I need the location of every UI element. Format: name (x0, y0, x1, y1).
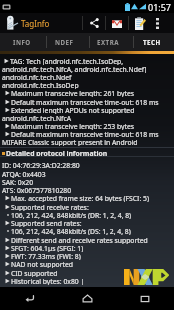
staticText: Extended length APDUs not supported (11, 106, 135, 114)
button[interactable]: Max. accepted frame size: 64 bytes (FSCI… (0, 194, 174, 202)
staticText: CID supported (11, 269, 58, 277)
staticText: Supported send rates: (11, 219, 82, 227)
button[interactable]: Extended length APDUs not supported (0, 106, 174, 114)
button[interactable]: SAK: 0x20 (0, 178, 174, 186)
staticText: FWT: 77.33ms (FWI: 8) (11, 252, 81, 260)
button[interactable]: MIFARE Classic support present in Androi… (0, 138, 174, 146)
staticText: Default maximum transceive time-out: 618… (11, 98, 159, 106)
button[interactable]: More options (151, 13, 164, 33)
staticText: ATQA: 0x4403 (2, 170, 46, 178)
staticText: android.nfc.tech.NfcA, android.nfc.tech.… (2, 65, 147, 73)
button[interactable]: Back (0, 287, 58, 310)
staticText: ATS: 0x067577810280 (2, 186, 72, 194)
staticText: SFGT: 604.1µs (SFGI: 1) (11, 244, 84, 252)
staticText: Maximum transceive length: 261 bytes (11, 89, 134, 97)
button[interactable]: ID: 04:76:29:3A:D2:28:80 (0, 161, 174, 169)
button[interactable]: CID supported (0, 269, 174, 277)
button[interactable]: Share (83, 13, 105, 33)
staticText: TECH (143, 38, 161, 46)
button[interactable]: Supported receive rates: (0, 203, 174, 211)
staticText: TAG: Tech [android.nfc.tech.IsoDep, (10, 57, 124, 65)
staticText: Maximum transceive length: 253 bytes (11, 122, 134, 130)
staticText: INFO (13, 38, 31, 46)
button[interactable]: android.nfc.tech.NfcA (0, 114, 174, 122)
staticText: 106, 212, 424, 848kbit/s (DS: 1, 2, 4, 8… (11, 227, 131, 235)
staticText: EXTRA (97, 38, 120, 46)
staticText: Different send and receive rates support… (11, 236, 148, 244)
button[interactable]: ATS: 0x067577810280 (0, 186, 174, 194)
button[interactable]: SFGT: 604.1µs (SFGI: 1) (0, 244, 174, 252)
button[interactable]: 106, 212, 424, 848kbit/s (DR: 1, 2, 4, 8… (0, 211, 174, 219)
button[interactable]: NDEF (43, 33, 86, 51)
button[interactable]: Send email (106, 13, 128, 33)
button[interactable]: Home (58, 287, 116, 310)
button[interactable]: NAD not supported (0, 260, 174, 268)
button[interactable]: android.nfc.tech.NfcA, android.nfc.tech.… (0, 65, 174, 73)
staticText: Supported receive rates: (11, 203, 89, 211)
staticText: android.nfc.tech.IsoDep (2, 81, 79, 89)
button[interactable]: TAG: Tech [android.nfc.tech.IsoDep, (0, 57, 174, 65)
staticText: ID: 04:76:29:3A:D2:28:80 (2, 161, 80, 169)
other: NXP (124, 269, 169, 285)
button[interactable]: Maximum transceive length: 253 bytes (0, 122, 174, 130)
button[interactable]: Default maximum transceive time-out: 618… (0, 98, 174, 106)
staticText: NAD not supported (11, 260, 73, 268)
staticText: Historical bytes: 0x80 | (11, 277, 85, 285)
button[interactable]: Maximum transceive length: 261 bytes (0, 89, 174, 97)
button[interactable]: Detailed protocol information (0, 149, 174, 157)
staticText: android.nfc.tech.Ndef (2, 73, 72, 81)
button[interactable]: EXTRA (86, 33, 130, 51)
button[interactable]: INFO (0, 33, 43, 51)
staticText: android.nfc.tech.NfcA (2, 114, 72, 122)
button[interactable]: android.nfc.tech.IsoDep (0, 81, 174, 89)
button[interactable]: Historical bytes: 0x80 | (0, 277, 174, 285)
staticText: Max. accepted frame size: 64 bytes (FSCI… (11, 194, 149, 202)
button[interactable]: TECH (130, 33, 174, 51)
button[interactable]: Default maximum transceive time-out: 618… (0, 130, 174, 138)
button[interactable]: android.nfc.tech.Ndef (0, 73, 174, 81)
button[interactable]: Supported send rates: (0, 219, 174, 227)
staticText: SAK: 0x20 (2, 178, 34, 186)
staticText: Detailed protocol information (6, 149, 108, 157)
staticText: 106, 212, 424, 848kbit/s (DR: 1, 2, 4, 8… (11, 211, 132, 219)
button[interactable]: 106, 212, 424, 848kbit/s (DS: 1, 2, 4, 8… (0, 227, 174, 235)
staticText: 01:57 (148, 1, 172, 13)
button[interactable]: ATQA: 0x4403 (0, 170, 174, 178)
staticText: Default maximum transceive time-out: 618… (11, 130, 159, 138)
button[interactable]: Different send and receive rates support… (0, 236, 174, 244)
button[interactable]: FWT: 77.33ms (FWI: 8) (0, 252, 174, 260)
button[interactable]: Report (129, 13, 151, 33)
staticText: TagInfo (21, 18, 50, 29)
staticText: NDEF (55, 38, 74, 46)
button[interactable]: Recent apps (116, 287, 174, 310)
staticText: MIFARE Classic support present in Androi… (2, 138, 138, 146)
